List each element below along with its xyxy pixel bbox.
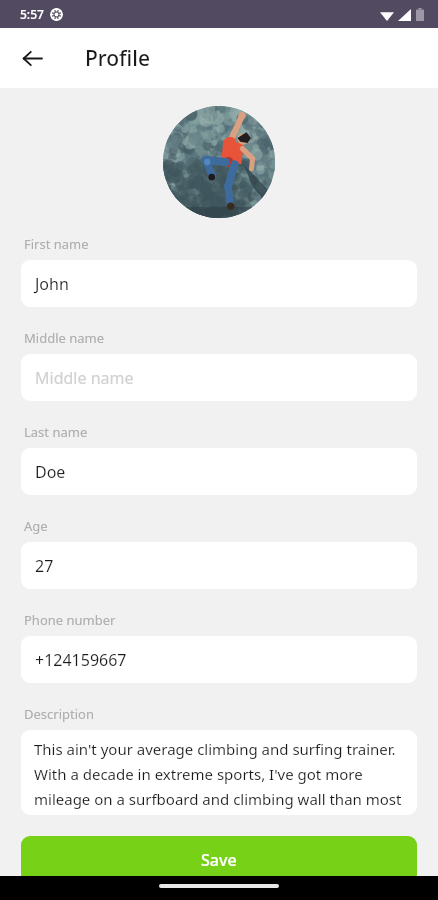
staticText: This ain't your average climbing and sur… xyxy=(34,739,407,815)
staticText: 27 xyxy=(35,555,54,577)
button[interactable]: Doe xyxy=(21,448,417,495)
staticText: 5:57 xyxy=(20,6,44,22)
button[interactable]: Save xyxy=(21,836,417,884)
staticText: Last name xyxy=(24,423,88,441)
button[interactable]: Profile photo xyxy=(163,106,275,218)
button[interactable]: John xyxy=(21,260,417,307)
button[interactable]: Back xyxy=(10,36,54,80)
staticText: Age xyxy=(24,517,48,535)
staticText: +124159667 xyxy=(35,649,127,671)
staticText: John xyxy=(35,273,69,295)
button[interactable]: This ain't your average climbing and sur… xyxy=(21,730,417,815)
button[interactable]: Middle name xyxy=(21,354,417,401)
staticText: Doe xyxy=(35,461,66,483)
button[interactable]: 27 xyxy=(21,542,417,589)
staticText: Middle name xyxy=(24,329,105,347)
staticText: Profile xyxy=(85,44,150,73)
staticText: Phone number xyxy=(24,611,116,629)
staticText: First name xyxy=(24,235,89,253)
staticText: Middle name xyxy=(35,367,134,389)
button[interactable]: +124159667 xyxy=(21,636,417,683)
staticText: Description xyxy=(24,705,94,723)
staticText: Save xyxy=(201,849,237,871)
